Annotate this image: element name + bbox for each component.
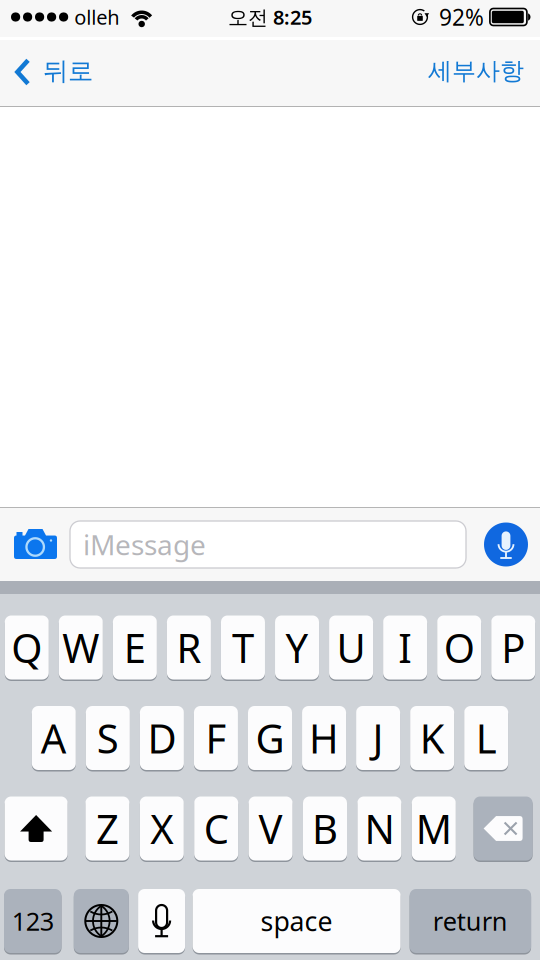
staticText: R <box>176 621 201 674</box>
button[interactable]: I <box>383 614 427 680</box>
staticText: 123 <box>12 904 54 938</box>
button[interactable]: Z <box>85 795 129 861</box>
button[interactable]: K <box>410 705 454 771</box>
button[interactable]: F <box>194 705 238 771</box>
staticText: V <box>259 802 283 855</box>
staticText: H <box>309 711 339 764</box>
button[interactable]: Take photo <box>14 513 70 575</box>
staticText: O <box>444 621 475 674</box>
button[interactable]: O <box>437 614 481 680</box>
staticText: olleh <box>74 4 119 30</box>
button[interactable]: A <box>32 705 76 771</box>
button[interactable]: 뒤로 <box>0 40 111 104</box>
staticText: D <box>147 711 176 764</box>
staticText: S <box>97 711 119 764</box>
staticText: X <box>150 802 173 855</box>
staticText: F <box>205 711 226 764</box>
staticText: C <box>204 802 229 855</box>
button[interactable]: B <box>303 795 347 861</box>
button[interactable]: P <box>491 614 535 680</box>
staticText: L <box>476 711 497 764</box>
staticText: N <box>364 802 394 855</box>
button[interactable]: V <box>249 795 293 861</box>
staticText: Y <box>285 621 308 674</box>
button[interactable]: N <box>357 795 401 861</box>
staticText: 92% <box>439 2 484 32</box>
button[interactable]: Shift <box>5 795 68 861</box>
staticText: 세부사항 <box>428 56 524 86</box>
staticText: Q <box>11 621 42 674</box>
button[interactable]: Next keyboard <box>74 888 129 954</box>
button[interactable]: E <box>113 614 157 680</box>
button[interactable]: C <box>194 795 238 861</box>
staticText: M <box>416 802 452 855</box>
button[interactable]: 세부사항 <box>412 40 540 104</box>
button[interactable]: space <box>193 888 401 954</box>
button[interactable]: Delete <box>474 795 533 861</box>
staticText: W <box>62 621 99 674</box>
staticText: K <box>420 711 445 764</box>
staticText: 오전 8:25 <box>228 4 312 30</box>
button[interactable]: J <box>356 705 400 771</box>
staticText: P <box>501 621 525 674</box>
button[interactable]: T <box>221 614 265 680</box>
button[interactable]: L <box>464 705 508 771</box>
button[interactable]: 123 <box>4 888 61 954</box>
staticText: 뒤로 <box>43 55 93 86</box>
staticText: J <box>373 711 384 764</box>
staticText: I <box>398 621 412 674</box>
staticText: iMessage <box>83 526 206 563</box>
button[interactable]: Dictate <box>480 513 532 575</box>
button[interactable]: X <box>140 795 184 861</box>
staticText: B <box>312 802 338 855</box>
button[interactable]: R <box>167 614 211 680</box>
button[interactable]: U <box>329 614 373 680</box>
staticText: space <box>261 903 333 939</box>
button[interactable]: S <box>86 705 130 771</box>
button[interactable]: H <box>302 705 346 771</box>
button[interactable]: D <box>140 705 184 771</box>
staticText: G <box>255 711 284 764</box>
staticText: E <box>124 621 146 674</box>
button[interactable]: W <box>59 614 103 680</box>
button[interactable]: Dictation <box>138 888 185 954</box>
button[interactable]: G <box>248 705 292 771</box>
button[interactable]: return <box>410 888 531 954</box>
button[interactable]: Q <box>5 614 49 680</box>
staticText: T <box>232 621 254 674</box>
staticText: return <box>433 904 508 938</box>
button[interactable]: M <box>412 795 456 861</box>
button[interactable]: Y <box>275 614 319 680</box>
staticText: Z <box>96 802 119 855</box>
staticText: A <box>41 711 67 764</box>
staticText: U <box>337 621 366 674</box>
